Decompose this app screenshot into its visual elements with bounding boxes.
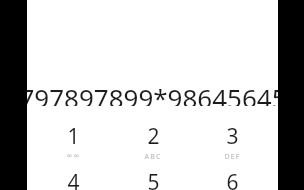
button[interactable]: 45668797897899*9864564566876 [27, 80, 278, 106]
staticText: ABC [144, 152, 162, 162]
button[interactable]: 1 [40, 118, 106, 164]
staticText: 6 [226, 168, 239, 190]
staticText: 2 [147, 122, 160, 151]
button[interactable]: 5 [120, 164, 186, 190]
staticText: 5 [147, 168, 160, 190]
staticText: 4 [67, 168, 80, 190]
button[interactable]: 2 [120, 118, 186, 164]
staticText: DEF [224, 152, 241, 162]
button[interactable]: 3 [199, 118, 265, 164]
staticText: 45668797897899*9864564566876 [27, 80, 278, 106]
button[interactable]: 4 [40, 164, 106, 190]
staticText: ∞∞ [66, 152, 81, 160]
staticText: 3 [226, 122, 239, 151]
staticText: 1 [67, 122, 80, 151]
button[interactable]: 6 [199, 164, 265, 190]
